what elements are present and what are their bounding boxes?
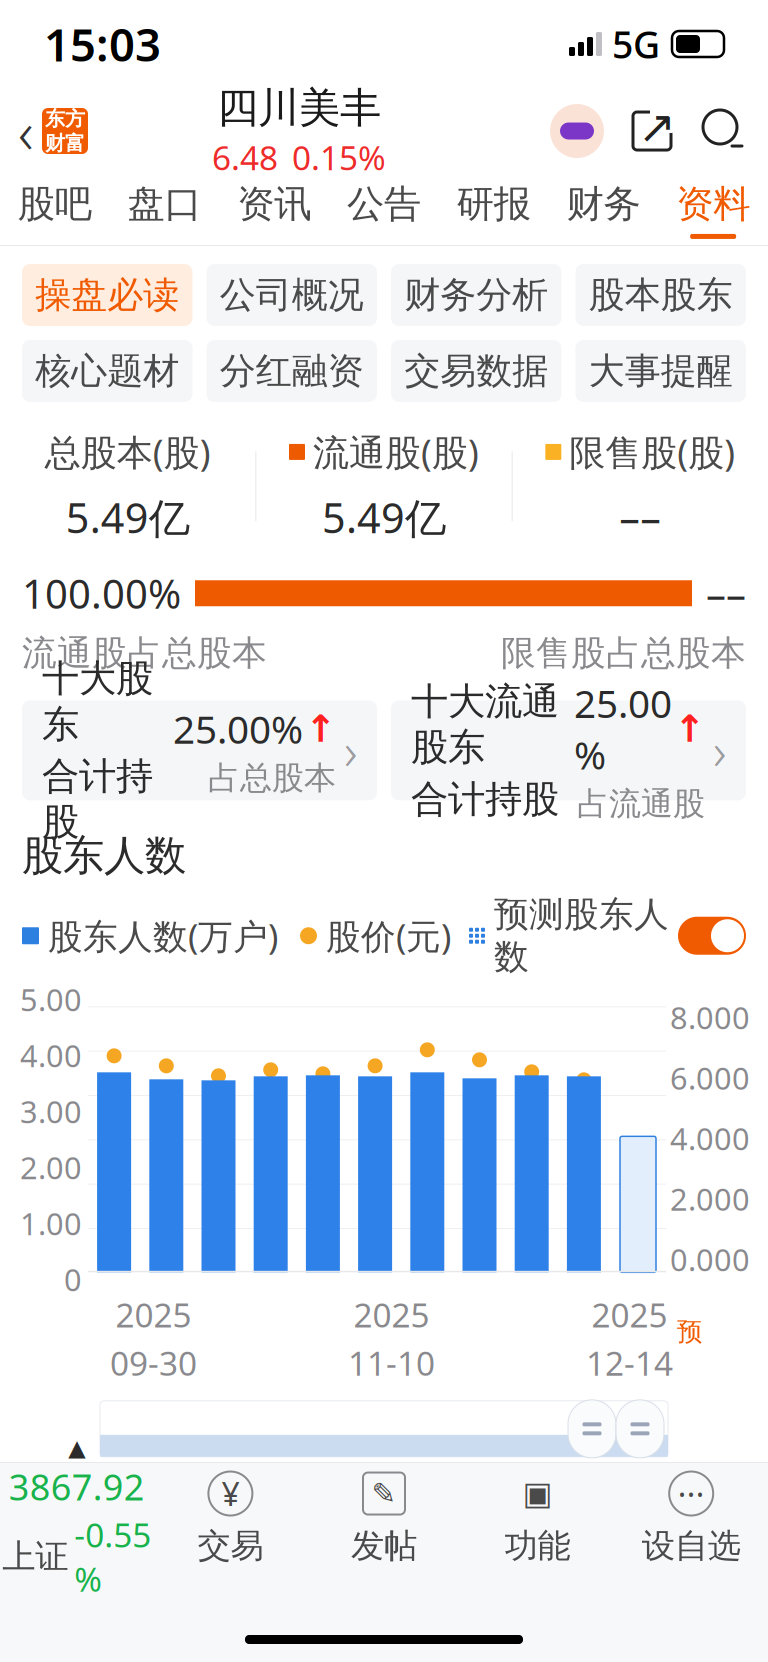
staticText: 3.00 (20, 1091, 82, 1132)
staticText: 公告 (347, 181, 421, 227)
button[interactable]: 研报 (439, 174, 549, 246)
staticText: 6.73 (505, 1603, 578, 1653)
button[interactable]: 盘口 (110, 174, 219, 246)
staticText: 2025 (115, 1292, 191, 1337)
staticText: 8.000 (670, 997, 750, 1038)
staticText: 流通股(股) (313, 428, 479, 476)
staticText: ‹ (18, 92, 34, 170)
staticText: ▲ (68, 1435, 85, 1461)
button[interactable]: 核心题材 (22, 340, 192, 402)
staticText: 资料 (676, 181, 750, 227)
button[interactable]: Share (628, 107, 676, 155)
staticText: › (344, 717, 357, 784)
staticText: ▣ (523, 1475, 553, 1512)
button[interactable]: AI assistant (550, 104, 604, 158)
staticText: ↗ (638, 101, 676, 153)
staticText: 交易 (197, 1525, 263, 1566)
button[interactable]: 股吧 (0, 174, 110, 246)
button[interactable]: 大事提醒 (575, 340, 746, 402)
staticText: 股东人数(万户) (48, 913, 278, 959)
staticText: 3.95万 (636, 1541, 746, 1591)
button[interactable]: 资讯 (219, 174, 329, 246)
button[interactable]: 操盘必读 (22, 264, 192, 326)
staticText: 核心题材 (35, 349, 179, 393)
staticText: 操盘必读 (35, 273, 179, 317)
staticText: 股价(元) (326, 913, 451, 959)
staticText: ↑ (305, 708, 336, 750)
staticText: 2025–11–20 (584, 1456, 746, 1552)
staticText: 5.49亿 (322, 490, 446, 545)
staticText: 2025 (591, 1292, 667, 1337)
staticText: 上证 (2, 1536, 68, 1577)
button[interactable]: ··· (614, 1469, 768, 1566)
staticText: 3.97万 (468, 1541, 578, 1591)
staticText: 25.00% (173, 703, 303, 754)
staticText: 财务 (566, 181, 640, 227)
staticText: 2.000 (670, 1178, 750, 1219)
button[interactable]: 财务 (549, 174, 658, 246)
staticText: 1.00 (20, 1203, 82, 1244)
staticText: › (713, 717, 726, 784)
staticText: 预 (677, 1316, 702, 1347)
staticText: ··· (678, 1472, 705, 1515)
button[interactable]: 财务分析 (391, 264, 561, 326)
staticText: 限售股(股) (569, 428, 735, 476)
staticText: 09-30 (110, 1341, 197, 1385)
button[interactable]: ▲ (0, 1435, 154, 1601)
button[interactable]: ¥ (154, 1469, 307, 1566)
button[interactable]: Toggle forecast (678, 917, 746, 955)
staticText: 25.00% (574, 677, 672, 780)
staticText: 占流通股 (577, 784, 705, 823)
staticText: 6.000 (670, 1057, 750, 1098)
staticText: 5G (612, 19, 660, 69)
staticText: 2025 (353, 1292, 429, 1337)
button[interactable]: 股本股东 (575, 264, 746, 326)
staticText: -0.55% (74, 1512, 151, 1601)
button[interactable]: 分红融资 (206, 340, 377, 402)
staticText: 资讯 (237, 181, 311, 227)
button[interactable]: Search (700, 107, 748, 155)
staticText: 2025–11–28 (416, 1456, 578, 1552)
staticText: 0 (64, 1259, 82, 1300)
staticText: 股东总人数(户) (22, 1518, 207, 1613)
button[interactable]: ▣ (461, 1469, 614, 1566)
staticText: 5.00 (20, 979, 82, 1020)
staticText: 合计持股 (411, 776, 559, 822)
staticText: 财务分析 (404, 273, 548, 317)
staticText: 占总股本 (208, 758, 336, 798)
staticText: 东方 (45, 106, 85, 131)
staticText: 12-14 (586, 1341, 673, 1385)
button[interactable]: ✎ (307, 1469, 461, 1566)
staticText: 盘口 (128, 181, 202, 227)
button[interactable]: 公司概况 (206, 264, 377, 326)
button[interactable]: Range start (568, 1400, 616, 1458)
staticText: 流通股占总股本 (22, 632, 267, 674)
staticText: –– (619, 490, 661, 545)
staticText: 限售股占总股本 (501, 632, 746, 674)
button[interactable]: 公告 (329, 174, 439, 246)
staticText: 2025–12–10 (248, 1456, 410, 1552)
staticText: 大事提醒 (589, 349, 733, 393)
button[interactable]: Back (0, 92, 88, 170)
staticText: ¥ (221, 1472, 239, 1515)
staticText: 股本股东 (589, 273, 733, 317)
staticText: 15:03 (44, 14, 161, 74)
staticText: 财富 (45, 131, 85, 156)
staticText: 预测股东人数 (494, 893, 669, 978)
button[interactable]: 十大流通股东 (391, 700, 746, 800)
staticText: 十大流通股东 (411, 679, 559, 770)
staticText: ↑ (674, 708, 705, 750)
staticText: 0.000 (670, 1239, 750, 1280)
staticText: 交易数据 (404, 349, 548, 393)
staticText: 公司概况 (220, 273, 364, 317)
staticText: 3867.92 (9, 1463, 145, 1510)
staticText: 6.56 (337, 1603, 410, 1653)
button[interactable]: 十大股东 (22, 700, 377, 800)
staticText: 3.96万 (300, 1541, 410, 1591)
button[interactable]: Range end (616, 1400, 664, 1458)
button[interactable]: 资料 (658, 174, 768, 246)
button[interactable]: 交易数据 (391, 340, 561, 402)
